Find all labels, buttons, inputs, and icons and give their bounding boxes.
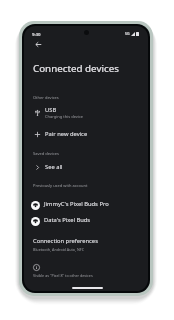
staticText: See all — [45, 163, 63, 171]
staticText: USB — [45, 106, 57, 114]
staticText: Connected devices — [33, 62, 119, 75]
staticText: 9:30 — [32, 31, 41, 37]
staticText: 5G — [125, 31, 130, 36]
staticText: Data's Pixel Buds — [44, 216, 91, 224]
staticText: Saved devices — [33, 151, 60, 156]
staticText: Connection preferences — [33, 237, 98, 245]
button[interactable]: JimmyC's Pixel Buds Pro — [24, 198, 146, 213]
staticText: Other devices — [33, 95, 59, 100]
staticText: JimmyC's Pixel Buds Pro — [44, 200, 109, 208]
button[interactable]: Back — [30, 36, 46, 52]
staticText: Previously used with account — [33, 183, 88, 188]
staticText: Pair new device — [45, 130, 88, 138]
staticText: Bluetooth, Android Auto, NFC — [33, 247, 85, 252]
staticText: Visible as "Pixel 8" to other devices — [33, 273, 93, 278]
button[interactable]: Connection preferences — [24, 237, 146, 252]
staticText: Charging this device — [45, 114, 84, 119]
button[interactable]: Data's Pixel Buds — [24, 214, 146, 229]
